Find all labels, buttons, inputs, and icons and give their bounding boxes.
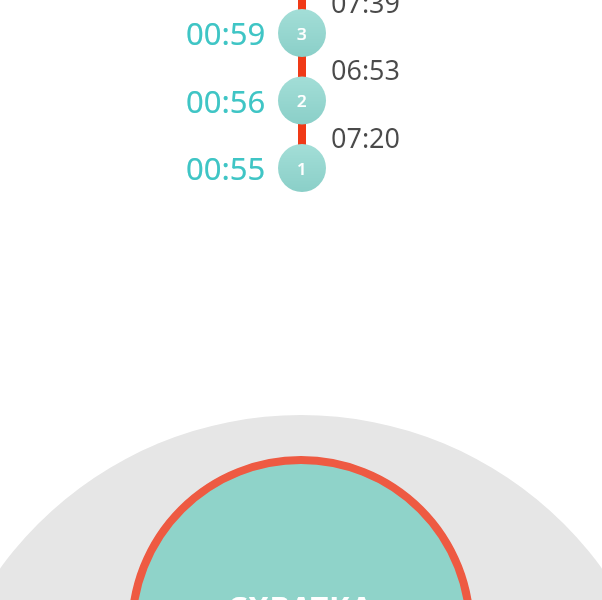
button[interactable]: СХВАТКА	[0, 0, 602, 600]
button[interactable]: Contraction history	[0, 0, 602, 600]
